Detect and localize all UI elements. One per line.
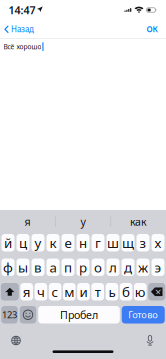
staticText: к (49, 234, 56, 252)
staticText: с (52, 283, 59, 301)
button[interactable]: а (46, 258, 59, 276)
staticText: и (79, 283, 87, 301)
button[interactable]: р (76, 258, 89, 276)
button[interactable]: м (63, 283, 76, 300)
button[interactable]: Shift (1, 283, 19, 300)
staticText: т (95, 283, 101, 301)
button[interactable]: я (0, 210, 55, 233)
button[interactable]: Назад (4, 21, 34, 37)
button[interactable]: л (106, 258, 119, 276)
button[interactable]: Delete (148, 283, 165, 300)
staticText: л (109, 258, 117, 276)
staticText: й (4, 234, 12, 252)
button[interactable]: ы (16, 258, 29, 276)
staticText: Всё хорошо (3, 42, 41, 51)
staticText: е (64, 234, 71, 252)
staticText: р (79, 258, 87, 276)
staticText: ОК (146, 24, 157, 34)
button[interactable]: я (20, 283, 33, 300)
staticText: б (122, 283, 130, 301)
button[interactable]: ю (134, 283, 147, 300)
button[interactable]: к (46, 234, 59, 251)
staticText: 123 (2, 309, 17, 321)
staticText: ы (18, 258, 28, 276)
button[interactable]: х (151, 234, 164, 251)
button[interactable]: у (55, 210, 110, 233)
staticText: п (64, 258, 72, 276)
button[interactable]: о (91, 258, 104, 276)
staticText: ч (37, 283, 45, 301)
button[interactable]: ь (106, 283, 118, 300)
staticText: я (24, 214, 30, 229)
staticText: м (64, 283, 74, 301)
button[interactable]: 123 (1, 306, 18, 323)
button[interactable]: п (61, 258, 74, 276)
button[interactable]: ц (16, 234, 29, 251)
staticText: ж (138, 258, 148, 276)
button[interactable]: з (136, 234, 149, 251)
button[interactable]: Пробел (38, 306, 120, 323)
staticText: а (49, 258, 56, 276)
staticText: ф (3, 258, 13, 276)
staticText: н (79, 234, 87, 252)
button[interactable]: ч (35, 283, 47, 300)
button[interactable]: э (151, 258, 164, 276)
staticText: о (94, 258, 102, 276)
button[interactable]: Emoji (20, 306, 36, 323)
staticText: ь (108, 283, 115, 301)
button[interactable]: ж (136, 258, 149, 276)
staticText: г (95, 234, 101, 252)
button[interactable]: ОК (146, 21, 157, 37)
staticText: я (23, 283, 31, 301)
button[interactable]: у (31, 234, 44, 251)
staticText: з (139, 234, 146, 252)
staticText: ш (107, 234, 119, 252)
staticText: Назад (11, 24, 34, 34)
button[interactable]: Dictation (140, 333, 160, 347)
staticText: в (34, 258, 42, 276)
button[interactable]: щ (121, 234, 134, 251)
staticText: у (34, 234, 41, 252)
staticText: ц (19, 234, 27, 252)
button[interactable]: как (111, 210, 166, 233)
button[interactable]: Next keyboard (6, 333, 26, 347)
button[interactable]: е (61, 234, 74, 251)
staticText: 14:47 (8, 3, 35, 17)
button[interactable]: Готово (122, 306, 165, 323)
staticText: у (80, 214, 85, 229)
button[interactable]: б (120, 283, 132, 300)
staticText: Пробел (60, 308, 98, 322)
button[interactable]: г (91, 234, 104, 251)
button[interactable]: т (91, 283, 104, 300)
staticText: э (154, 258, 161, 276)
staticText: д (124, 258, 132, 276)
button[interactable]: д (121, 258, 134, 276)
staticText: ю (135, 283, 146, 301)
staticText: х (154, 234, 161, 252)
staticText: Готово (128, 309, 158, 321)
button[interactable]: й (1, 234, 14, 251)
button[interactable]: с (49, 283, 61, 300)
button[interactable]: ф (1, 258, 14, 276)
button[interactable]: ш (106, 234, 119, 251)
button[interactable]: в (31, 258, 44, 276)
staticText: как (130, 214, 147, 229)
staticText: щ (122, 234, 134, 252)
button[interactable]: и (77, 283, 90, 300)
button[interactable]: н (76, 234, 89, 251)
